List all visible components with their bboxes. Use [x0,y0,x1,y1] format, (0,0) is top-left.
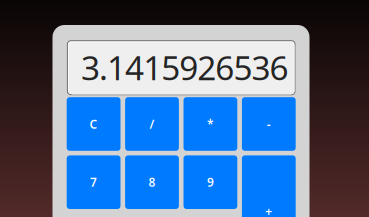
staticText: - [267,116,271,132]
staticText: / [149,116,154,132]
button[interactable]: / [125,97,179,151]
button[interactable]: * [183,97,237,151]
staticText: 8 [148,174,155,190]
staticText: + [265,203,272,217]
button[interactable]: + [242,155,296,217]
staticText: 7 [90,174,97,190]
button[interactable]: C [67,97,120,151]
staticText: 3.1415926536 [81,45,288,89]
button[interactable]: 8 [125,155,179,209]
staticText: * [207,116,214,132]
button[interactable]: 7 [67,155,120,209]
staticText: 9 [207,174,214,190]
staticText: C [90,116,98,132]
button[interactable]: 9 [183,155,237,209]
button[interactable]: - [242,97,296,151]
